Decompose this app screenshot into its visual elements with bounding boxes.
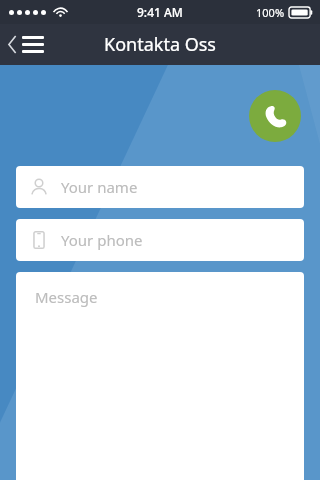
button[interactable]: Your name xyxy=(16,166,304,208)
staticText: 100% xyxy=(256,5,285,20)
staticText: Your phone xyxy=(61,230,143,250)
button[interactable]: Open navigation menu xyxy=(0,24,62,65)
button[interactable]: Call us xyxy=(249,90,301,142)
staticText: Message xyxy=(35,287,98,307)
staticText: 9:41 AM xyxy=(137,4,183,20)
staticText: Your name xyxy=(61,177,138,197)
staticText: Kontakta Oss xyxy=(104,32,216,57)
button[interactable]: Your phone xyxy=(16,219,304,261)
button[interactable]: Message xyxy=(16,272,304,480)
